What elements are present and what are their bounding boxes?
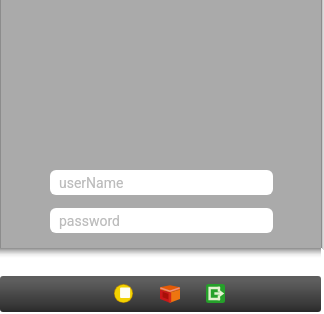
button[interactable]: Log out	[206, 284, 225, 303]
button[interactable]: Notes	[114, 284, 133, 303]
button[interactable]: password	[50, 208, 273, 233]
button[interactable]: Packages	[160, 285, 180, 303]
staticText: password	[59, 213, 120, 229]
staticText: userName	[59, 175, 124, 191]
button[interactable]: userName	[50, 170, 273, 195]
